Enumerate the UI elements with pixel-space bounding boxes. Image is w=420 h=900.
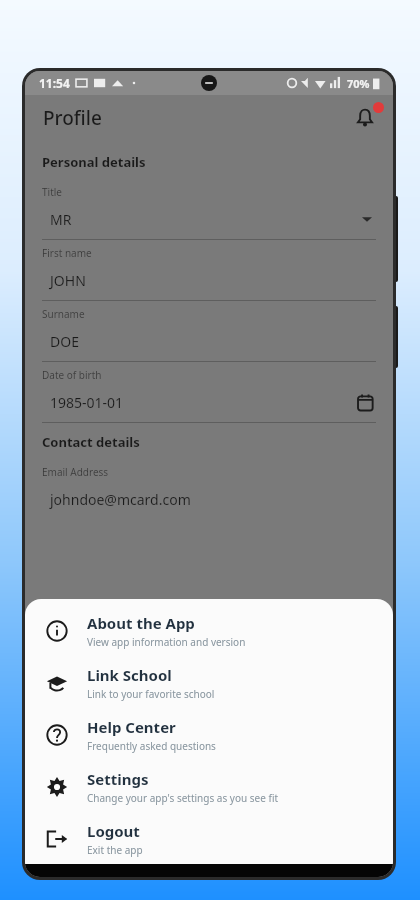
staticText: Surname: [42, 307, 85, 321]
staticText: Contact details: [42, 433, 140, 451]
staticText: 70%: [347, 76, 370, 91]
button[interactable]: First name: [42, 240, 376, 301]
staticText: View app information and version: [87, 635, 246, 649]
button[interactable]: Email Address: [42, 459, 376, 519]
button[interactable]: Date of birth: [42, 362, 376, 423]
staticText: Title: [42, 185, 62, 199]
button[interactable]: Link School: [25, 657, 393, 709]
button[interactable]: About the App: [25, 605, 393, 657]
button[interactable]: Help Center: [25, 709, 393, 761]
staticText: johndoe@mcard.com: [50, 490, 376, 509]
staticText: Link School: [87, 665, 172, 685]
staticText: MR: [50, 210, 362, 229]
staticText: Frequently asked questions: [87, 739, 216, 753]
staticText: About the App: [87, 613, 195, 633]
staticText: Email Address: [42, 465, 109, 479]
staticText: Settings: [87, 769, 149, 789]
button[interactable]: Notifications: [345, 98, 385, 138]
staticText: Change your app's settings as you see fi…: [87, 791, 279, 805]
staticText: 11:54: [39, 75, 70, 91]
button[interactable]: Surname: [42, 301, 376, 362]
staticText: JOHN: [50, 271, 376, 290]
staticText: DOE: [50, 332, 376, 351]
staticText: Personal details: [42, 153, 146, 171]
staticText: 1985-01-01: [50, 393, 357, 412]
staticText: Date of birth: [42, 368, 102, 382]
staticText: Profile: [43, 105, 102, 131]
button[interactable]: Settings: [25, 761, 393, 813]
staticText: Exit the app: [87, 843, 143, 857]
staticText: Help Center: [87, 717, 176, 737]
button[interactable]: Title: [42, 179, 376, 240]
staticText: Logout: [87, 821, 140, 841]
staticText: First name: [42, 246, 92, 260]
button[interactable]: Logout: [25, 813, 393, 864]
staticText: Link to your favorite school: [87, 687, 215, 701]
